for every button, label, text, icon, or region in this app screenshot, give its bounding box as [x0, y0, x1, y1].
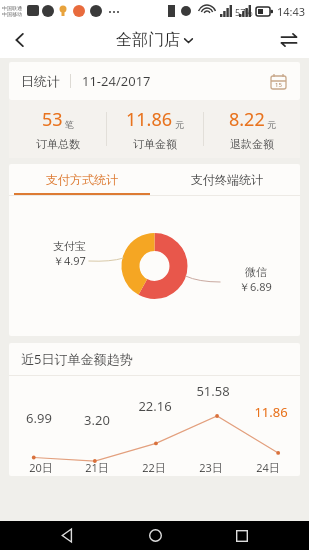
- staticText: 11.86: [254, 403, 288, 421]
- staticText: 笔: [65, 119, 74, 130]
- staticText: 订单总数: [36, 137, 80, 151]
- staticText: 15: [275, 81, 282, 89]
- staticText: 57%: [235, 6, 253, 18]
- staticText: 53: [42, 107, 63, 132]
- button[interactable]: Home: [135, 521, 175, 550]
- staticText: 22日: [142, 460, 166, 475]
- staticText: 退款金额: [230, 137, 274, 151]
- staticText: 3.20: [84, 411, 110, 429]
- staticText: 23日: [199, 460, 223, 475]
- staticText: 6.99: [26, 409, 52, 427]
- staticText: 微信: [245, 265, 267, 279]
- staticText: 中国移动: [2, 11, 22, 17]
- staticText: 支付终端统计: [191, 172, 263, 187]
- staticText: 订单金额: [133, 137, 177, 151]
- button[interactable]: 支付方式统计: [9, 164, 154, 195]
- staticText: 22.16: [138, 397, 172, 415]
- button[interactable]: 全部门店: [116, 30, 194, 50]
- staticText: 支付宝: [53, 239, 86, 253]
- staticText: 11.86: [126, 107, 173, 132]
- staticText: 近5日订单金额趋势: [21, 350, 133, 368]
- button[interactable]: 11.86: [107, 100, 203, 158]
- staticText: 51.58: [196, 382, 230, 400]
- staticText: 11-24/2017: [82, 72, 151, 90]
- staticText: 全部门店: [116, 30, 180, 50]
- staticText: 20日: [29, 460, 53, 475]
- staticText: 14:43: [277, 4, 306, 19]
- button[interactable]: Back: [47, 521, 87, 550]
- button[interactable]: 日统计: [9, 62, 300, 100]
- staticText: 8.22: [229, 107, 265, 132]
- staticText: 24日: [256, 460, 280, 475]
- staticText: 中国联通: [2, 5, 22, 11]
- button[interactable]: Pick date: [271, 74, 286, 89]
- button[interactable]: Switch: [269, 22, 309, 58]
- staticText: 元: [175, 119, 184, 130]
- button[interactable]: 8.22: [204, 100, 300, 158]
- button[interactable]: Recents: [222, 521, 262, 550]
- staticText: 支付方式统计: [46, 172, 118, 187]
- staticText: ￥6.89: [239, 279, 272, 294]
- button[interactable]: 支付终端统计: [154, 164, 300, 195]
- staticText: 21日: [85, 460, 109, 475]
- staticText: ￥4.97: [53, 253, 86, 268]
- staticText: 日统计: [21, 73, 60, 89]
- staticText: 元: [267, 119, 276, 130]
- button[interactable]: Back: [0, 22, 40, 58]
- button[interactable]: 53: [9, 100, 106, 158]
